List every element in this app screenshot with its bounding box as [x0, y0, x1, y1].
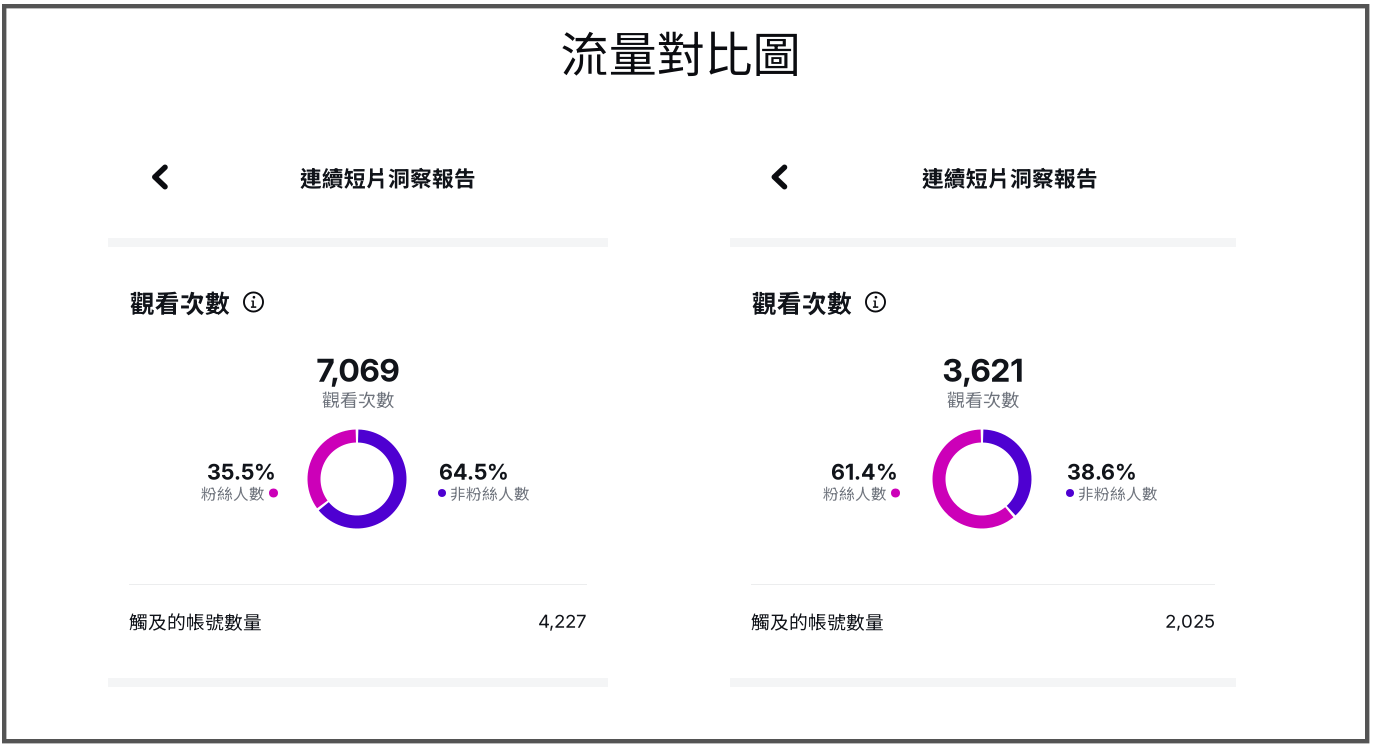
- staticText: 粉絲人數: [201, 482, 265, 504]
- staticText: 4,227: [538, 610, 587, 632]
- staticText: 觀看次數: [322, 386, 394, 412]
- staticText: 連續短片洞察報告: [922, 161, 1098, 193]
- staticText: 粉絲人數: [823, 482, 887, 504]
- staticText: 觸及的帳號數量: [751, 607, 884, 634]
- staticText: 觀看次數: [130, 284, 230, 320]
- staticText: 61.4%: [831, 459, 898, 485]
- staticText: 非粉絲人數: [450, 482, 530, 504]
- button[interactable]: 返回: [138, 155, 182, 199]
- staticText: 流量對比圖: [560, 16, 800, 86]
- staticText: 64.5%: [439, 459, 509, 485]
- staticText: 35.5%: [207, 459, 276, 485]
- button[interactable]: 返回: [757, 155, 801, 199]
- staticText: 觀看次數: [752, 284, 852, 320]
- staticText: 連續短片洞察報告: [300, 161, 476, 193]
- staticText: 觸及的帳號數量: [129, 607, 262, 634]
- staticText: 7,069: [316, 351, 399, 389]
- staticText: 觀看次數: [947, 386, 1019, 412]
- staticText: 非粉絲人數: [1078, 482, 1158, 504]
- staticText: 3,621: [942, 351, 1023, 389]
- staticText: 38.6%: [1067, 459, 1137, 485]
- staticText: 2,025: [1165, 610, 1215, 632]
